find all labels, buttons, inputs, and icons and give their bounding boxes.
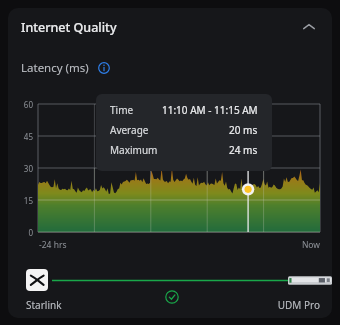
staticText: 24 ms (229, 143, 258, 157)
staticText: Latency (ms) (21, 60, 89, 76)
button[interactable]: Internet Quality (8, 8, 332, 46)
other: Collapse (298, 16, 320, 38)
staticText: 60 (23, 99, 33, 110)
button[interactable]: Starlink (26, 269, 48, 291)
staticText: Maximum (110, 143, 158, 157)
button[interactable]: UDM Pro (288, 275, 332, 286)
staticText: -24 hrs (39, 239, 67, 251)
staticText: 20 ms (229, 123, 258, 137)
button[interactable]: Info (96, 60, 112, 76)
staticText: 45 (23, 131, 33, 142)
staticText: 0 (28, 227, 33, 238)
staticText: Now (301, 239, 320, 251)
staticText: 11:10 AM - 11:15 AM (162, 103, 258, 117)
staticText: Internet Quality (21, 19, 117, 36)
staticText: 30 (23, 163, 33, 174)
staticText: Average (110, 123, 149, 137)
staticText: UDM Pro (277, 298, 320, 312)
button[interactable]: Connection healthy (164, 289, 180, 305)
staticText: Starlink (26, 298, 62, 312)
staticText: 15 (23, 195, 33, 206)
staticText: Time (110, 103, 134, 117)
